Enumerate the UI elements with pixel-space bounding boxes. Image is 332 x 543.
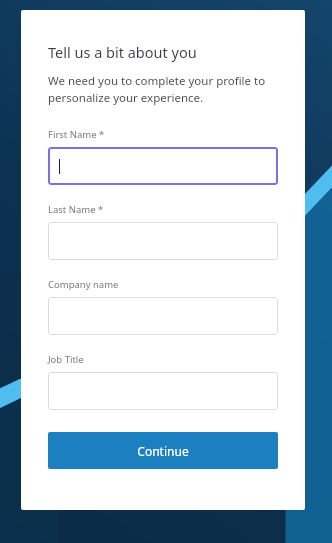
button[interactable]: First Name *: [48, 147, 278, 185]
staticText: Tell us a bit about you: [48, 42, 197, 62]
button[interactable]: Company name: [48, 297, 278, 335]
staticText: Company name: [48, 278, 119, 291]
staticText: We need you to complete your profile to …: [48, 73, 278, 106]
staticText: Job Title: [48, 353, 84, 366]
button[interactable]: Continue: [48, 432, 278, 469]
staticText: Last Name *: [48, 203, 104, 216]
button[interactable]: Job Title: [48, 372, 278, 410]
button[interactable]: Last Name *: [48, 222, 278, 260]
staticText: First Name *: [48, 128, 105, 141]
staticText: Continue: [137, 443, 189, 459]
